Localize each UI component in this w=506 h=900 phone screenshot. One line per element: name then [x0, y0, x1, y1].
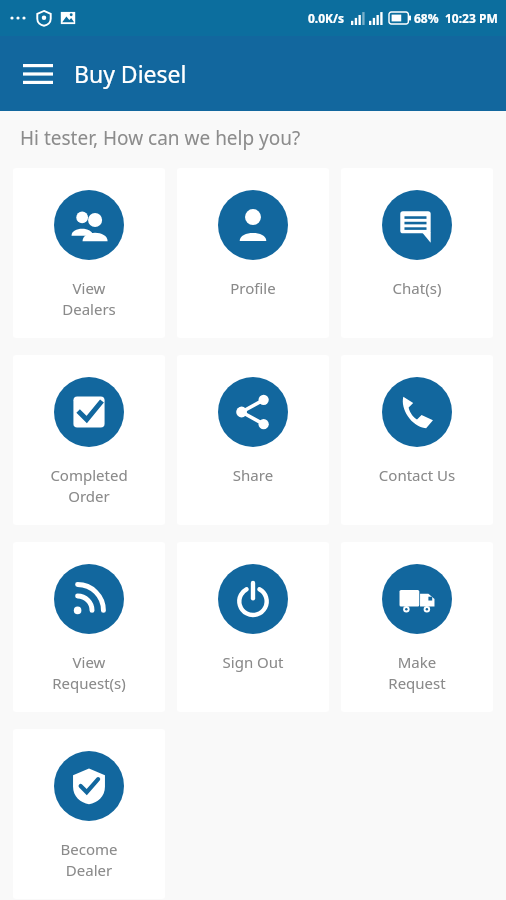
staticText: Chat(s): [341, 278, 493, 298]
button[interactable]: View Requests: [13, 542, 165, 712]
staticText: Completed Order: [13, 465, 165, 507]
staticText: Contact Us: [341, 465, 493, 485]
staticText: Buy Diesel: [74, 58, 187, 89]
button[interactable]: Share: [177, 355, 329, 525]
staticText: Sign Out: [177, 652, 329, 672]
button[interactable]: View Dealers: [13, 168, 165, 338]
staticText: 10:23 PM: [445, 10, 498, 26]
staticText: Profile: [177, 278, 329, 298]
staticText: Become Dealer: [13, 839, 165, 881]
button[interactable]: Completed Order: [13, 355, 165, 525]
staticText: View Request(s): [13, 652, 165, 694]
button[interactable]: Contact Us: [341, 355, 493, 525]
button[interactable]: Profile: [177, 168, 329, 338]
button[interactable]: Chats: [341, 168, 493, 338]
staticText: 68%: [414, 10, 439, 26]
button[interactable]: Become Dealer: [13, 729, 165, 899]
button[interactable]: Sign Out: [177, 542, 329, 712]
staticText: Hi tester, How can we help you?: [20, 125, 301, 151]
staticText: 0.0K/s: [308, 10, 345, 26]
staticText: View Dealers: [13, 278, 165, 320]
button[interactable]: Open navigation menu: [14, 50, 62, 98]
button[interactable]: Make Request: [341, 542, 493, 712]
staticText: Make Request: [341, 652, 493, 694]
staticText: Share: [177, 465, 329, 485]
